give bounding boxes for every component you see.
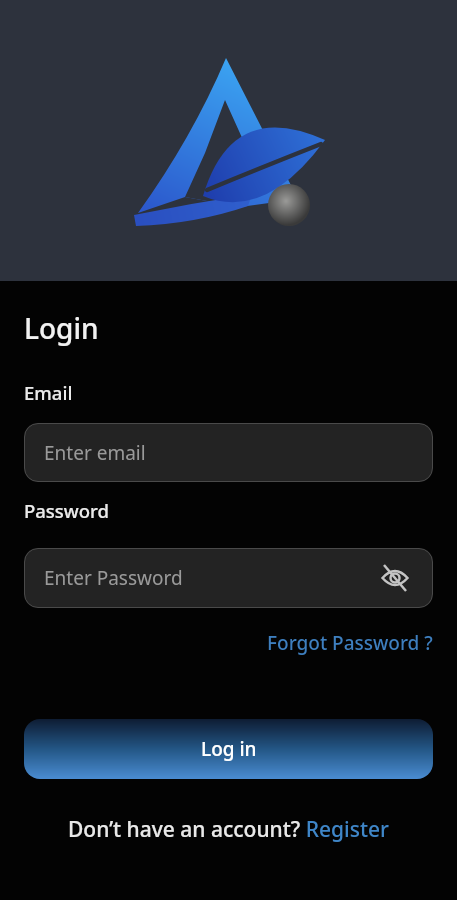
button[interactable]: Forgot Password ? (267, 630, 433, 656)
staticText: Log in (201, 736, 257, 762)
staticText: Email (24, 380, 73, 405)
staticText: Login (24, 309, 99, 347)
staticText: Enter email (44, 440, 146, 466)
button[interactable]: Don’t have an account? Register (68, 815, 389, 844)
staticText: Password (24, 498, 110, 523)
staticText: Enter Password (44, 565, 183, 591)
button[interactable]: Log in (24, 719, 433, 779)
button[interactable]: Enter email (24, 423, 433, 482)
button[interactable]: Enter Password (24, 548, 433, 608)
